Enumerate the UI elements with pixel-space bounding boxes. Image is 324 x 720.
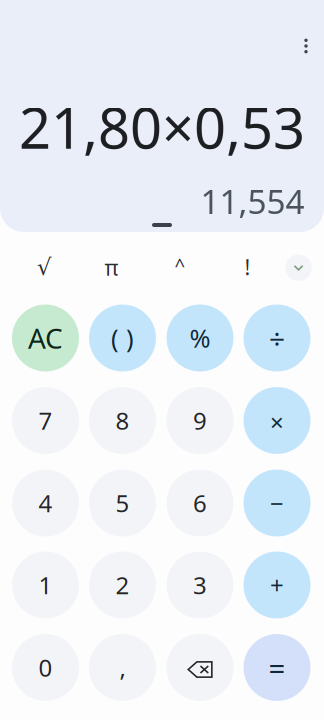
staticText: × <box>270 406 284 438</box>
button[interactable]: − <box>243 469 310 536</box>
staticText: 21,80×0,53 <box>19 90 305 164</box>
staticText: ÷ <box>269 319 285 357</box>
staticText: 2 <box>115 569 129 601</box>
staticText: 3 <box>193 569 207 601</box>
button[interactable]: π <box>87 246 135 288</box>
button[interactable]: , <box>89 634 156 701</box>
button[interactable]: % <box>166 304 233 371</box>
button[interactable]: Expand <box>278 248 318 288</box>
staticText: 5 <box>115 487 129 519</box>
staticText: ( ) <box>111 321 134 355</box>
button[interactable]: Backspace <box>166 634 233 701</box>
staticText: 1 <box>38 569 52 601</box>
button[interactable]: 4 <box>12 469 79 536</box>
button[interactable]: 7 <box>12 387 79 454</box>
staticText: √ <box>37 254 51 280</box>
staticText: 8 <box>115 405 129 436</box>
button[interactable]: 6 <box>166 469 233 536</box>
button[interactable]: 0 <box>12 634 79 701</box>
staticText: 9 <box>193 405 207 436</box>
staticText: ^ <box>174 253 185 277</box>
button[interactable]: 2 <box>89 551 156 618</box>
button[interactable]: ÷ <box>243 304 310 371</box>
button[interactable]: ^ <box>156 244 204 286</box>
staticText: − <box>270 487 284 519</box>
staticText: = <box>268 648 285 687</box>
staticText: , <box>119 652 125 683</box>
button[interactable]: 9 <box>166 387 233 454</box>
button[interactable]: AC <box>12 304 79 371</box>
button[interactable]: ( ) <box>89 304 156 371</box>
staticText: 6 <box>193 487 207 519</box>
staticText: 11,554 <box>200 179 304 223</box>
button[interactable]: + <box>243 551 310 618</box>
staticText: ! <box>244 253 250 281</box>
button[interactable]: 1 <box>12 551 79 618</box>
button[interactable]: 5 <box>89 469 156 536</box>
staticText: 0 <box>38 652 52 683</box>
staticText: 4 <box>38 487 52 519</box>
staticText: % <box>189 321 210 355</box>
staticText: π <box>104 253 118 282</box>
button[interactable]: √ <box>20 246 68 288</box>
button[interactable]: × <box>243 387 310 454</box>
button[interactable]: 8 <box>89 387 156 454</box>
staticText: + <box>270 569 284 601</box>
staticText: 7 <box>38 405 52 436</box>
button[interactable]: ! <box>223 246 271 288</box>
button[interactable]: 3 <box>166 551 233 618</box>
staticText: AC <box>28 319 63 357</box>
button[interactable]: More options <box>288 28 324 64</box>
button[interactable]: = <box>243 634 310 701</box>
